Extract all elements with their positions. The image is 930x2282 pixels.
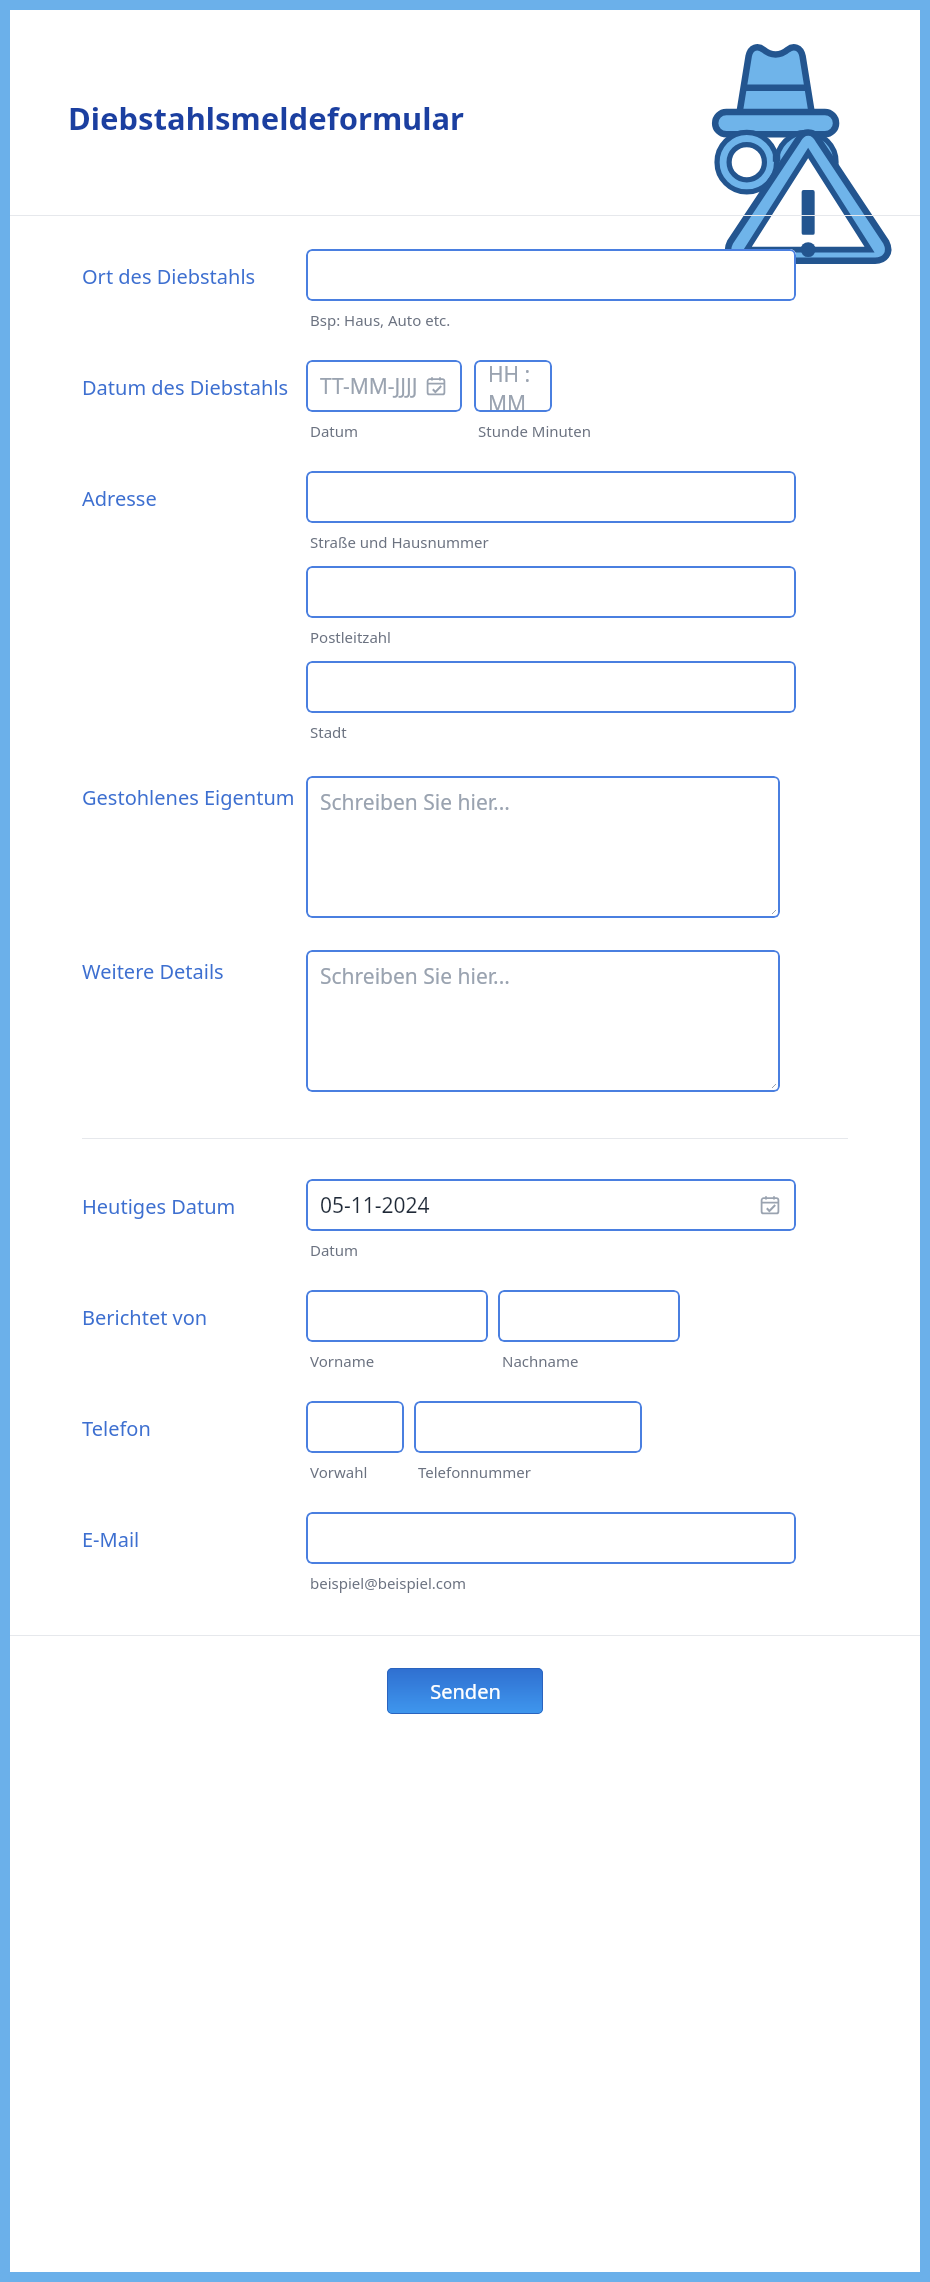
- staticText: E-Mail: [82, 1526, 140, 1553]
- staticText: 05-11-2024: [320, 1191, 430, 1220]
- staticText: Stadt: [310, 722, 347, 742]
- staticText: HH : MM: [488, 360, 552, 412]
- button[interactable]: Senden: [387, 1668, 543, 1714]
- staticText: Weitere Details: [82, 958, 224, 985]
- button[interactable]: Vorwahl: [306, 1401, 404, 1453]
- staticText: Ort des Diebstahls: [82, 263, 256, 290]
- button[interactable]: Straße und Hausnummer: [306, 471, 796, 523]
- staticText: Telefonnummer: [418, 1462, 531, 1482]
- staticText: Straße und Hausnummer: [310, 532, 489, 552]
- button[interactable]: Stadt: [306, 661, 796, 713]
- staticText: Stunde Minuten: [478, 421, 591, 441]
- staticText: beispiel@beispiel.com: [310, 1573, 467, 1593]
- button[interactable]: Nachname: [498, 1290, 680, 1342]
- button[interactable]: Vorname: [306, 1290, 488, 1342]
- button[interactable]: Uhrzeit: [474, 360, 552, 412]
- staticText: TT-MM-JJJJ: [320, 372, 418, 401]
- staticText: Postleitzahl: [310, 627, 391, 647]
- button[interactable]: Ort des Diebstahls: [306, 249, 796, 301]
- staticText: Datum: [310, 1240, 359, 1260]
- staticText: Senden: [430, 1678, 501, 1705]
- staticText: Diebstahlsmeldeformular: [68, 97, 464, 139]
- staticText: Vorwahl: [310, 1462, 368, 1482]
- staticText: Gestohlenes Eigentum: [82, 784, 295, 811]
- staticText: Datum des Diebstahls: [82, 374, 289, 401]
- staticText: Adresse: [82, 485, 157, 512]
- staticText: Schreiben Sie hier...: [320, 788, 510, 817]
- button[interactable]: Postleitzahl: [306, 566, 796, 618]
- staticText: Schreiben Sie hier...: [320, 962, 510, 991]
- staticText: Telefon: [82, 1415, 151, 1442]
- button[interactable]: Heutiges Datum: [306, 1179, 796, 1231]
- button[interactable]: E-Mail: [306, 1512, 796, 1564]
- button[interactable]: Telefonnummer: [414, 1401, 642, 1453]
- staticText: Nachname: [502, 1351, 579, 1371]
- button[interactable]: Gestohlenes Eigentum: [306, 776, 780, 918]
- staticText: Datum: [310, 421, 359, 441]
- staticText: Heutiges Datum: [82, 1193, 236, 1220]
- staticText: Bsp: Haus, Auto etc.: [310, 310, 451, 330]
- staticText: Berichtet von: [82, 1304, 208, 1331]
- button[interactable]: Weitere Details: [306, 950, 780, 1092]
- staticText: Vorname: [310, 1351, 375, 1371]
- button[interactable]: Datum des Diebstahls: [306, 360, 462, 412]
